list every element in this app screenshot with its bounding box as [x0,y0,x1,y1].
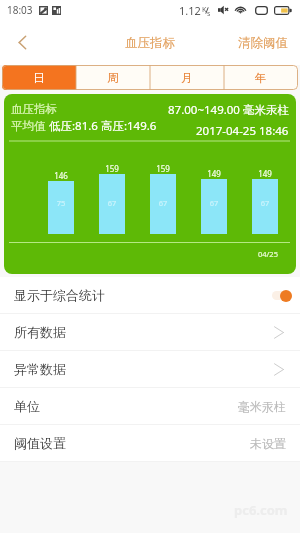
button[interactable]: 周 [76,65,150,90]
staticText: 149 [201,168,227,179]
staticText: 平均值 [11,118,49,134]
staticText: 75 [48,198,74,208]
staticText: 67 [150,198,176,208]
staticText: 低压:81.6 高压:149.6 [49,118,157,134]
staticText: 血压指标 [11,102,57,116]
staticText: 月 [181,71,193,85]
staticText: 159 [150,163,176,174]
button[interactable]: 所有数据 [0,314,300,350]
staticText: 周 [107,71,119,85]
button[interactable]: 单位 [0,388,300,424]
staticText: 单位 [14,398,40,414]
staticText: 未设置 [250,436,286,451]
staticText: 所有数据 [14,324,66,340]
staticText: 年 [255,71,267,85]
staticText: 显示于综合统计 [14,287,105,303]
staticText: 日 [33,71,45,85]
button[interactable]: 异常数据 [0,351,300,387]
button[interactable]: 日 [2,65,76,90]
staticText: 1.12 [179,3,201,18]
staticText: 异常数据 [14,361,66,377]
staticText: pc6.com [234,501,288,519]
staticText: 血压指标 [125,35,175,51]
staticText: 18:03 [7,3,33,17]
staticText: K [202,5,207,15]
button[interactable]: 月 [150,65,224,90]
staticText: s [207,9,211,19]
button[interactable]: 清除阈值 [226,20,300,65]
staticText: 04/25 [258,249,278,259]
staticText: 67 [201,198,227,208]
button[interactable]: 年 [224,65,298,90]
button[interactable]: 阈值设置 [0,425,300,461]
staticText: 67 [252,198,278,208]
staticText: 149 [252,168,278,179]
staticText: 毫米汞柱 [238,399,286,414]
button[interactable]: Back [0,20,44,65]
staticText: 2017-04-25 18:46 [196,123,289,139]
button[interactable]: 显示于综合统计 [0,277,300,313]
staticText: 146 [48,170,74,181]
staticText: 159 [99,163,125,174]
staticText: 清除阈值 [238,35,288,51]
button[interactable]: Show in overall statistics toggle [272,289,292,302]
staticText: 87.00~149.00 毫米汞柱 [168,102,289,118]
staticText: 阈值设置 [14,435,66,451]
staticText: 67 [99,198,125,208]
